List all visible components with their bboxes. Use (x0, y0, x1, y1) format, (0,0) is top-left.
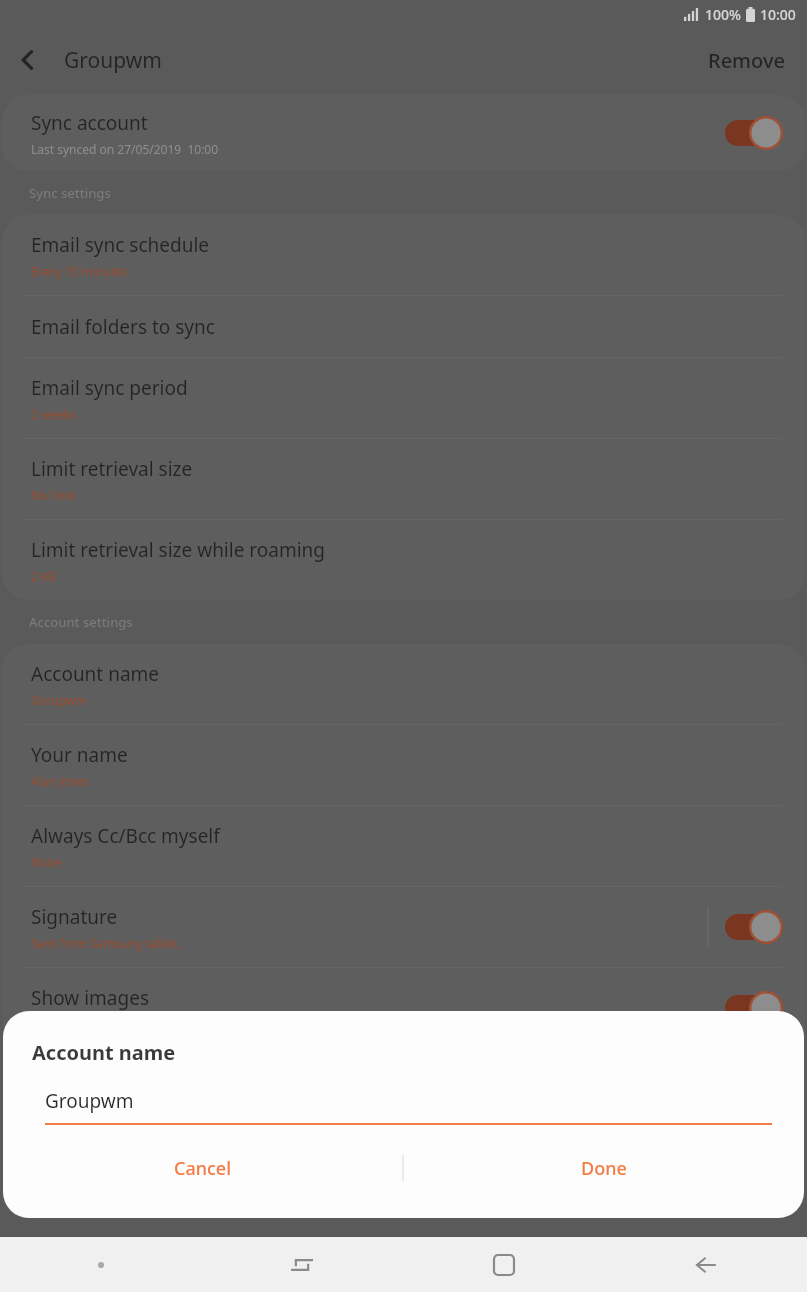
button[interactable]: Always Cc/Bcc myself (2, 806, 805, 886)
button[interactable]: Groupwm (45, 1088, 772, 1125)
button[interactable]: Sync account (2, 95, 805, 171)
button[interactable]: Cancel (3, 1132, 402, 1204)
staticText: Email sync period (31, 375, 188, 401)
staticText: Signature (31, 904, 118, 930)
button[interactable]: Limit retrieval size (2, 439, 805, 519)
staticText: Email folders to sync (31, 314, 215, 340)
staticText: Show images (31, 985, 149, 1011)
staticText: No limit (31, 487, 76, 503)
staticText: Sync settings (29, 184, 111, 202)
button[interactable]: Signature (2, 887, 805, 967)
staticText: Sync account (31, 110, 148, 136)
button[interactable]: Email folders to sync (2, 296, 805, 357)
staticText: Always Cc/Bcc myself (31, 823, 220, 849)
button[interactable]: Email sync period (2, 358, 805, 438)
button[interactable]: Toggle setting (725, 910, 783, 944)
button[interactable]: Home (403, 1237, 605, 1292)
staticText: Your name (31, 742, 128, 768)
staticText: 100% (705, 5, 741, 24)
button[interactable]: Remove (686, 33, 807, 88)
staticText: Last synced on 27/05/2019 10:00 (31, 141, 219, 157)
staticText: Limit retrieval size while roaming (31, 537, 326, 563)
button[interactable]: Recent apps (201, 1237, 403, 1292)
button[interactable]: Account name (2, 644, 805, 724)
staticText: Every 15 minutes (31, 263, 128, 279)
staticText: Limit retrieval size (31, 456, 193, 482)
button[interactable]: Navigate back (0, 32, 56, 88)
staticText: Email sync schedule (31, 232, 210, 258)
staticText: 2 KB (31, 568, 57, 584)
staticText: Done (581, 1156, 627, 1181)
button[interactable]: Your name (2, 725, 805, 805)
button[interactable]: Limit retrieval size while roaming (2, 520, 805, 600)
button[interactable]: Back (605, 1237, 807, 1292)
button[interactable]: Show images (2, 968, 805, 1048)
staticText: None (31, 854, 62, 870)
staticText: Cancel (174, 1156, 232, 1181)
staticText: Account settings (29, 613, 133, 631)
staticText: Account name (32, 1039, 176, 1066)
button[interactable]: Done (404, 1132, 804, 1204)
staticText: Remove (708, 47, 785, 74)
staticText: Sent from Samsung tablet. (31, 935, 182, 951)
staticText: Alan Jones (31, 773, 90, 789)
staticText: Groupwm (31, 692, 87, 708)
staticText: Groupwm (45, 1088, 134, 1114)
button[interactable]: Toggle setting (725, 116, 783, 150)
button[interactable]: Toggle setting (725, 991, 783, 1025)
button[interactable]: Email sync schedule (2, 215, 805, 295)
staticText: Groupwm (64, 46, 162, 75)
staticText: Account name (31, 661, 160, 687)
staticText: 2 weeks (31, 406, 77, 422)
staticText: 10:00 (760, 5, 796, 24)
